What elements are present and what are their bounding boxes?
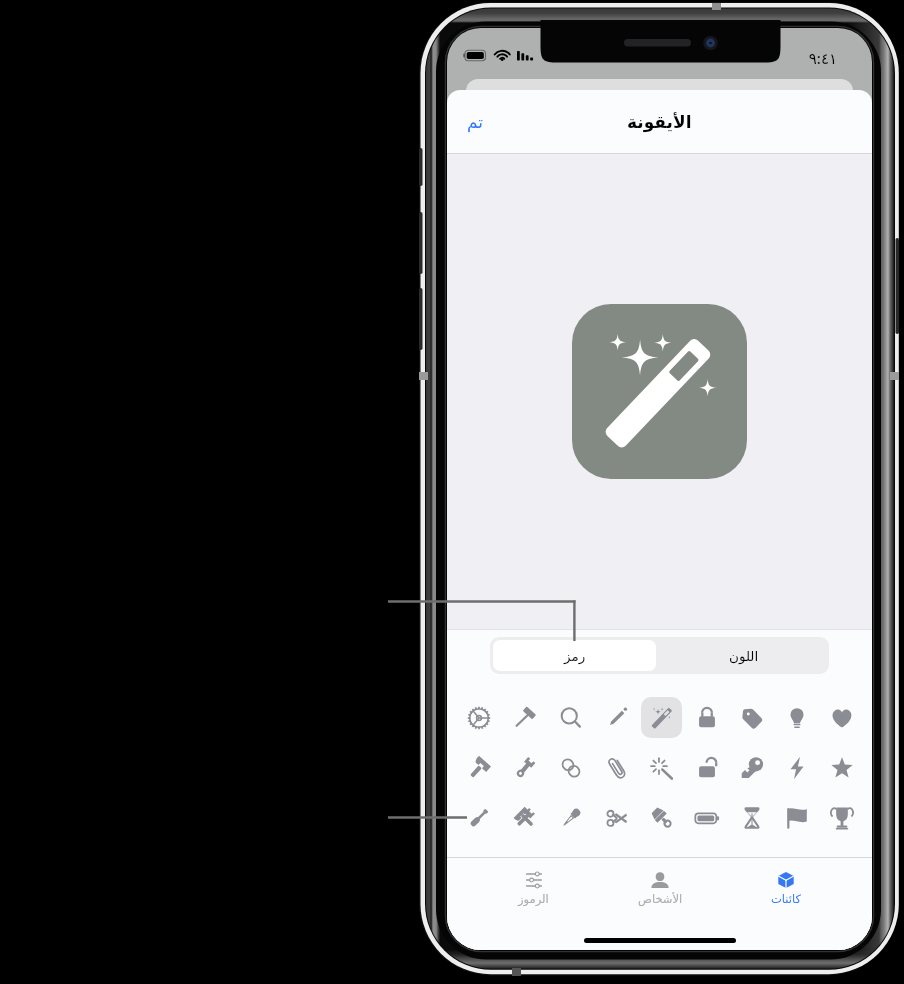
staticText: اللون (729, 648, 759, 664)
button[interactable]: scissors (596, 797, 637, 838)
button[interactable]: brush (641, 797, 682, 838)
button[interactable]: الأشخاص (597, 858, 723, 916)
button[interactable]: sparkle (641, 747, 682, 788)
button[interactable]: bolt (776, 747, 817, 788)
staticText: ٩:٤١ (767, 48, 837, 68)
button[interactable]: trophy (821, 797, 862, 838)
button[interactable]: كائنات (723, 858, 849, 916)
button[interactable]: star (821, 747, 862, 788)
button[interactable]: تم (459, 106, 492, 138)
button[interactable]: gear (458, 697, 499, 738)
button[interactable]: heart (821, 697, 862, 738)
button[interactable]: link (550, 747, 591, 788)
button[interactable]: paperclip (596, 747, 637, 788)
button[interactable]: hammer2 (504, 697, 545, 738)
button[interactable]: key (731, 747, 772, 788)
button[interactable]: wand (641, 697, 682, 738)
staticText: الأشخاص (638, 892, 683, 905)
button[interactable]: lock (686, 697, 727, 738)
button[interactable]: الرموز (470, 858, 597, 916)
button[interactable]: wrench (504, 747, 545, 788)
button[interactable]: hourglass (731, 797, 772, 838)
button[interactable]: bulb (776, 697, 817, 738)
button[interactable]: tag (731, 697, 772, 738)
button[interactable]: رمز (493, 640, 656, 671)
staticText: الأيقونة (627, 112, 692, 132)
button[interactable]: dropper (550, 797, 591, 838)
button[interactable]: flag (776, 797, 817, 838)
button[interactable]: pencil (596, 697, 637, 738)
button[interactable]: unlock (686, 747, 727, 788)
button[interactable]: screwdriver (458, 797, 499, 838)
button[interactable]: اللون (659, 637, 829, 674)
staticText: الرموز (518, 892, 549, 905)
button[interactable]: search (550, 697, 591, 738)
staticText: رمز (564, 648, 586, 664)
button[interactable]: hammer (458, 747, 499, 788)
button[interactable]: battery (686, 797, 727, 838)
staticText: تم (467, 112, 484, 132)
button[interactable]: tools (504, 797, 545, 838)
staticText: كائنات (771, 892, 801, 905)
